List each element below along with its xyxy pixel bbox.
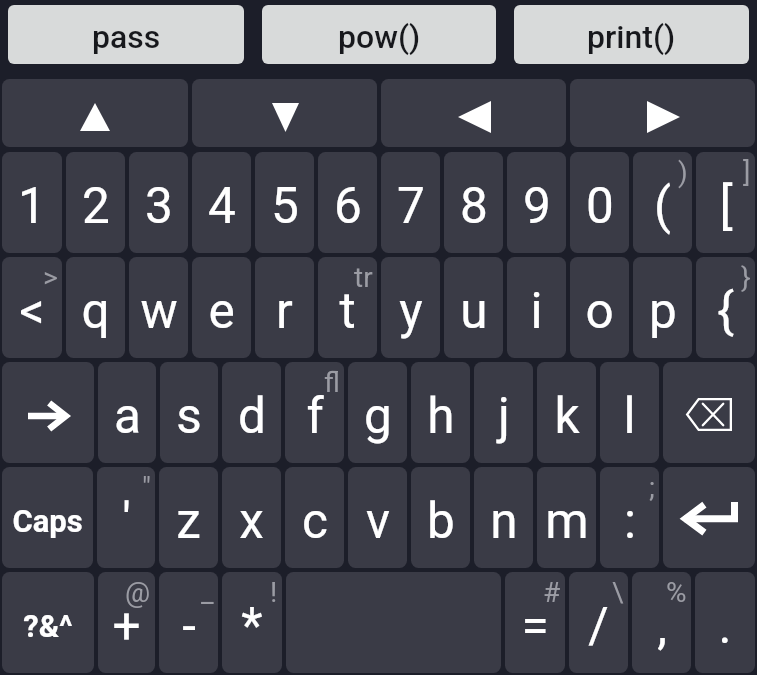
- staticText: fl: [324, 366, 340, 399]
- staticText: x: [239, 492, 264, 550]
- button[interactable]: h: [411, 362, 470, 463]
- button[interactable]: 9: [507, 152, 566, 253]
- staticText: h: [427, 387, 455, 445]
- staticText: w: [140, 282, 178, 340]
- button[interactable]: g: [348, 362, 407, 463]
- button[interactable]: *: [222, 572, 282, 673]
- button[interactable]: c: [285, 467, 344, 568]
- staticText: -: [182, 597, 196, 655]
- staticText: _: [201, 576, 214, 609]
- button[interactable]: m: [537, 467, 596, 568]
- button[interactable]: :: [600, 467, 659, 568]
- button[interactable]: Up: [2, 79, 188, 147]
- staticText: p: [649, 282, 677, 340]
- button[interactable]: y: [381, 257, 440, 358]
- staticText: pow(): [338, 18, 421, 56]
- button[interactable]: n: [474, 467, 533, 568]
- staticText: c: [302, 492, 328, 550]
- button[interactable]: /: [569, 572, 628, 673]
- button[interactable]: 7: [381, 152, 440, 253]
- button[interactable]: q: [66, 257, 125, 358]
- staticText: g: [364, 387, 392, 445]
- button[interactable]: l: [600, 362, 659, 463]
- button[interactable]: 8: [444, 152, 503, 253]
- staticText: v: [366, 492, 390, 550]
- staticText: ?&^: [23, 608, 73, 644]
- button[interactable]: Enter: [663, 467, 755, 568]
- staticText: ): [678, 156, 688, 189]
- button[interactable]: t: [318, 257, 377, 358]
- button[interactable]: d: [222, 362, 281, 463]
- button[interactable]: a: [98, 362, 156, 463]
- staticText: j: [498, 387, 510, 445]
- button[interactable]: e: [192, 257, 251, 358]
- button[interactable]: r: [255, 257, 314, 358]
- button[interactable]: z: [159, 467, 218, 568]
- staticText: 3: [145, 177, 173, 235]
- button[interactable]: pow(): [262, 5, 496, 64]
- button[interactable]: i: [507, 257, 566, 358]
- button[interactable]: v: [348, 467, 407, 568]
- button[interactable]: 0: [570, 152, 629, 253]
- button[interactable]: o: [570, 257, 629, 358]
- staticText: print(): [587, 18, 676, 56]
- button[interactable]: 6: [318, 152, 377, 253]
- button[interactable]: 1: [2, 152, 62, 253]
- button[interactable]: f: [285, 362, 344, 463]
- staticText: q: [81, 282, 110, 340]
- staticText: a: [114, 387, 141, 445]
- button[interactable]: ': [97, 467, 155, 568]
- staticText: 5: [271, 177, 299, 235]
- button[interactable]: [: [696, 152, 755, 253]
- button[interactable]: j: [474, 362, 533, 463]
- staticText: !: [270, 576, 278, 609]
- staticText: r: [276, 282, 293, 340]
- button[interactable]: .: [695, 572, 755, 673]
- button[interactable]: Tab: [2, 362, 94, 463]
- button[interactable]: s: [160, 362, 218, 463]
- button[interactable]: 2: [66, 152, 125, 253]
- button[interactable]: Right: [570, 79, 755, 147]
- button[interactable]: Backspace: [663, 362, 755, 463]
- button[interactable]: 3: [129, 152, 188, 253]
- staticText: f: [306, 387, 324, 445]
- staticText: =: [521, 597, 549, 655]
- button[interactable]: b: [411, 467, 470, 568]
- button[interactable]: print(): [514, 5, 749, 64]
- staticText: 8: [460, 177, 488, 235]
- button[interactable]: 5: [255, 152, 314, 253]
- staticText: m: [545, 492, 589, 550]
- button[interactable]: ?&^: [2, 572, 94, 673]
- button[interactable]: 4: [192, 152, 251, 253]
- button[interactable]: w: [129, 257, 188, 358]
- button[interactable]: p: [633, 257, 692, 358]
- staticText: e: [208, 282, 235, 340]
- staticText: <: [19, 282, 45, 340]
- button[interactable]: Caps: [2, 467, 93, 568]
- staticText: 9: [523, 177, 551, 235]
- staticText: /: [588, 597, 609, 655]
- button[interactable]: u: [444, 257, 503, 358]
- staticText: 7: [397, 177, 425, 235]
- staticText: [: [719, 177, 733, 235]
- button[interactable]: =: [505, 572, 565, 673]
- button[interactable]: (: [633, 152, 692, 253]
- button[interactable]: <: [2, 257, 62, 358]
- button[interactable]: +: [98, 572, 155, 673]
- staticText: Caps: [12, 503, 83, 539]
- button[interactable]: -: [159, 572, 218, 673]
- staticText: :: [624, 492, 636, 550]
- button[interactable]: k: [537, 362, 596, 463]
- button[interactable]: ,: [632, 572, 691, 673]
- staticText: *: [241, 597, 263, 655]
- staticText: o: [585, 282, 614, 340]
- button[interactable]: Left: [381, 79, 566, 147]
- button[interactable]: x: [222, 467, 281, 568]
- staticText: pass: [92, 18, 161, 56]
- button[interactable]: Down: [192, 79, 377, 147]
- staticText: 4: [208, 177, 236, 235]
- button[interactable]: {: [696, 257, 755, 358]
- staticText: z: [176, 492, 201, 550]
- button[interactable]: pass: [8, 5, 244, 64]
